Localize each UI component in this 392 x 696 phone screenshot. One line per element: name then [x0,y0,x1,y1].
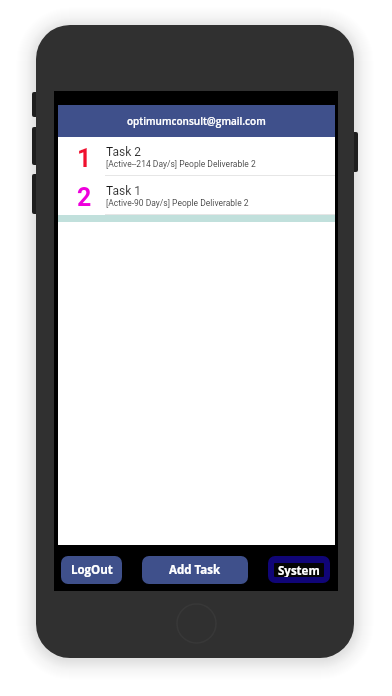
button[interactable]: System [268,556,330,583]
button[interactable]: 2 [58,176,335,215]
staticText: Task 2 [106,145,142,159]
staticText: System [278,563,320,577]
button[interactable]: optimumconsult@gmail.com [58,105,335,137]
staticText: [Active--214 Day/s] People Deliverable 2 [106,159,256,169]
staticText: Add Task [169,562,221,578]
staticText: 1 [77,144,92,173]
staticText: 2 [77,183,92,212]
staticText: Task 1 [106,184,142,198]
staticText: [Active-90 Day/s] People Deliverable 2 [106,198,249,208]
staticText: LogOut [71,562,113,578]
button[interactable]: LogOut [61,556,122,584]
button[interactable]: 1 [58,137,335,176]
staticText: optimumconsult@gmail.com [127,114,266,128]
button[interactable]: Add Task [142,556,248,584]
